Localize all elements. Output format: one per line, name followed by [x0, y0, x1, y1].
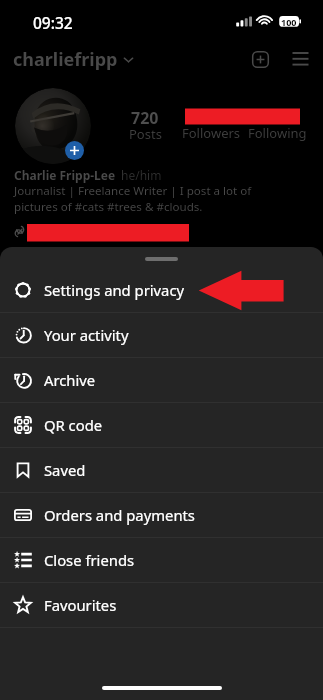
staticText: Orders and payments	[44, 505, 195, 525]
button[interactable]: Following	[244, 124, 310, 142]
staticText: Journalist | Freelance Writer | I post a…	[14, 183, 252, 215]
button[interactable]: Your activity	[0, 313, 323, 357]
staticText: Followers	[182, 124, 241, 142]
staticText: Archive	[44, 370, 96, 390]
staticText: charliefripp	[13, 47, 118, 72]
button[interactable]: Followers	[177, 124, 245, 142]
button[interactable]: Orders and payments	[0, 493, 323, 537]
staticText: Your activity	[44, 325, 129, 345]
button[interactable]: Favourites	[0, 583, 323, 627]
button[interactable]: 720	[118, 102, 172, 162]
staticText: 100	[281, 16, 297, 27]
button[interactable]: QR code	[0, 403, 323, 447]
staticText: Saved	[44, 460, 86, 480]
staticText: Close friends	[44, 550, 135, 570]
button[interactable]: Saved	[0, 448, 323, 492]
button[interactable]: Archive	[0, 358, 323, 402]
staticText: QR code	[44, 415, 103, 435]
staticText: he/him	[121, 167, 162, 183]
staticText: 720	[131, 107, 159, 129]
staticText: Following	[248, 124, 307, 142]
staticText: 09:32	[33, 12, 73, 33]
staticText: Charlie Fripp-Lee	[14, 167, 116, 183]
button[interactable]: Add	[65, 141, 84, 160]
staticText: Favourites	[44, 595, 117, 615]
button[interactable]: charliefripp	[13, 47, 134, 72]
button[interactable]: Menu	[288, 47, 312, 71]
button[interactable]: New post	[248, 47, 272, 71]
staticText: Posts	[129, 125, 162, 143]
button[interactable]: Close friends	[0, 538, 323, 582]
staticText: Settings and privacy	[44, 280, 185, 300]
button[interactable]: Settings and privacy	[0, 268, 323, 312]
button[interactable]: Profile picture	[15, 88, 91, 164]
